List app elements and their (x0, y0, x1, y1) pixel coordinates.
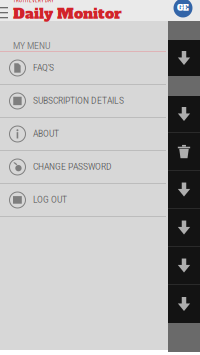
staticText: MY MENU (13, 41, 50, 51)
staticText: CHANGE PASSWORD (33, 162, 112, 172)
button[interactable]: Download (168, 40, 200, 76)
staticText: TRUTH EVERY DAY (13, 0, 54, 3)
button[interactable]: Download (168, 247, 200, 284)
button[interactable]: Download (168, 171, 200, 208)
staticText: LOG OUT (33, 195, 67, 205)
staticText: GE (177, 2, 189, 13)
button[interactable]: Open menu (0, 0, 13, 21)
staticText: ABOUT (33, 129, 59, 139)
staticText: FAQ'S (33, 63, 54, 73)
button[interactable]: FAQ'S (0, 52, 166, 85)
button[interactable]: Delete (168, 133, 200, 170)
button[interactable]: Download (168, 285, 200, 323)
button[interactable]: Download (168, 209, 200, 246)
button[interactable]: LOG OUT (0, 184, 166, 217)
staticText: Daily Monitor (13, 4, 122, 24)
button[interactable]: Download (168, 96, 200, 132)
button[interactable]: SUBSCRIPTION DETAILS (0, 85, 166, 118)
staticText: SUBSCRIPTION DETAILS (33, 96, 124, 106)
button[interactable]: GE (171, 0, 195, 20)
button[interactable]: CHANGE PASSWORD (0, 151, 166, 184)
button[interactable]: ABOUT (0, 118, 166, 151)
